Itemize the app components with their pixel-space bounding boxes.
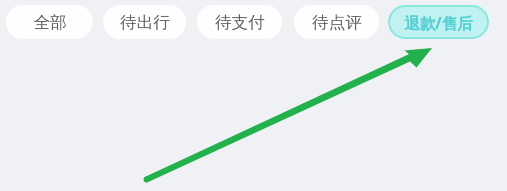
- button[interactable]: 待点评: [294, 5, 379, 39]
- button[interactable]: 待支付: [197, 5, 282, 39]
- staticText: 全部: [33, 12, 67, 33]
- staticText: 待点评: [312, 12, 362, 33]
- button[interactable]: 待出行: [103, 5, 186, 39]
- button[interactable]: 退款/售后: [388, 5, 489, 39]
- other: Annotation arrow pointing to 退款/售后 filte…: [0, 0, 507, 191]
- button[interactable]: 全部: [6, 5, 93, 39]
- staticText: 待支付: [215, 12, 265, 33]
- staticText: 退款/售后: [404, 12, 473, 33]
- staticText: 待出行: [120, 12, 170, 33]
